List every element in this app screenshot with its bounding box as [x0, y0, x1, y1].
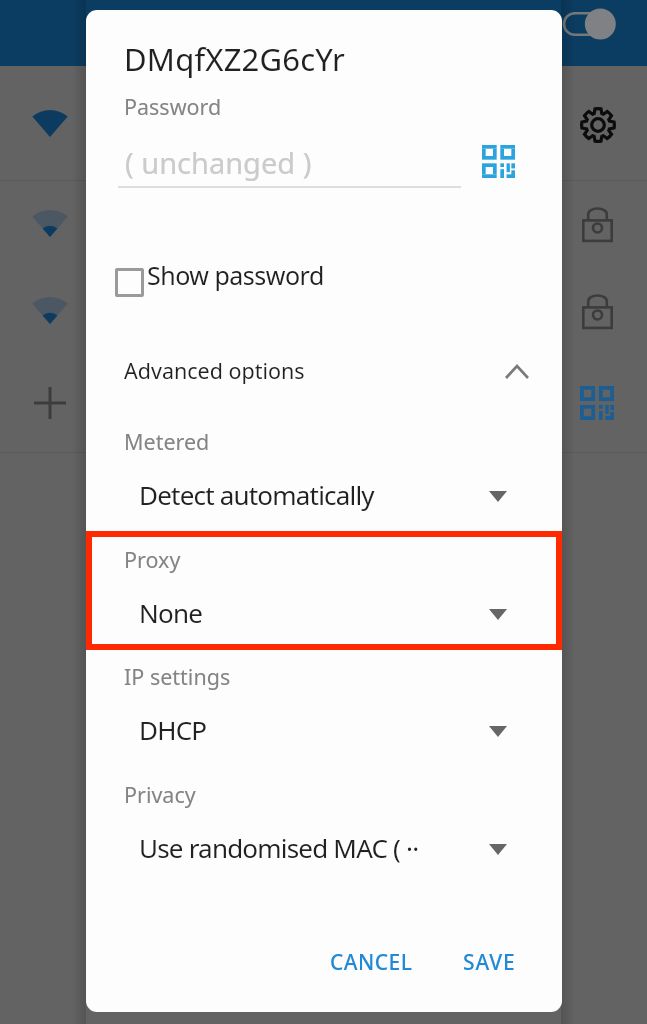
- staticText: Metered: [124, 427, 210, 456]
- button[interactable]: Scan QR code: [580, 386, 614, 420]
- button[interactable]: Proxy: [86, 543, 562, 655]
- staticText: SAVE: [463, 948, 516, 977]
- staticText: Privacy: [124, 780, 196, 809]
- button[interactable]: Privacy: [86, 778, 562, 890]
- staticText: Use randomised MAC ( ··: [139, 830, 419, 865]
- staticText: DMqfXZ2G6cYr: [124, 38, 346, 80]
- button[interactable]: Advanced options: [86, 350, 562, 400]
- button[interactable]: Show password: [86, 258, 562, 310]
- staticText: Advanced options: [124, 356, 305, 385]
- staticText: Detect automatically: [139, 477, 374, 512]
- staticText: Proxy: [124, 545, 181, 574]
- staticText: Show password: [147, 258, 324, 292]
- button[interactable]: Add network: [34, 387, 66, 419]
- button[interactable]: Wi-Fi toggle: [562, 0, 642, 48]
- staticText: Password: [124, 92, 222, 121]
- button[interactable]: Metered: [86, 425, 562, 537]
- button[interactable]: CANCEL: [318, 938, 414, 990]
- button[interactable]: SAVE: [451, 938, 527, 990]
- staticText: IP settings: [124, 662, 231, 691]
- button[interactable]: Network settings: [580, 107, 616, 143]
- staticText: ( unchanged ): [125, 143, 312, 182]
- staticText: DHCP: [139, 712, 207, 747]
- button[interactable]: IP settings: [86, 660, 562, 772]
- staticText: CANCEL: [330, 948, 413, 977]
- staticText: None: [139, 595, 203, 630]
- button[interactable]: Scan QR code: [482, 145, 515, 178]
